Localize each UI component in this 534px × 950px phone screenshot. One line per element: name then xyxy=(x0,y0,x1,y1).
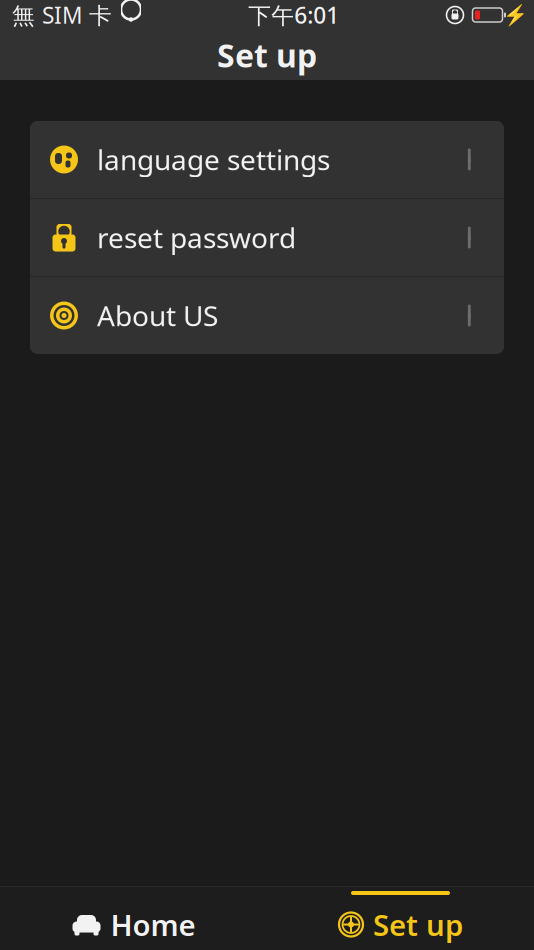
staticText: Home xyxy=(110,905,195,944)
button[interactable]: About US xyxy=(30,277,504,354)
button[interactable]: Set up xyxy=(267,899,534,950)
staticText: About US xyxy=(97,297,218,334)
staticText: Set up xyxy=(373,905,463,944)
staticText: 下午6:01 xyxy=(248,0,339,30)
staticText: language settings xyxy=(97,141,330,178)
button[interactable]: language settings xyxy=(30,121,504,198)
staticText: 無 SIM 卡 xyxy=(12,0,112,30)
staticText: reset password xyxy=(97,219,296,256)
staticText: ⚡ xyxy=(503,4,528,26)
button[interactable]: reset password xyxy=(30,199,504,276)
button[interactable]: Home xyxy=(0,899,267,950)
staticText: Set up xyxy=(217,34,317,76)
